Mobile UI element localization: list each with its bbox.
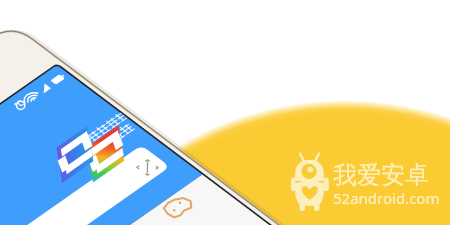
staticText: 52android.com [333, 188, 440, 208]
other: 52android promotional banner [0, 0, 450, 225]
staticText: 我爱安卓 [333, 160, 429, 190]
